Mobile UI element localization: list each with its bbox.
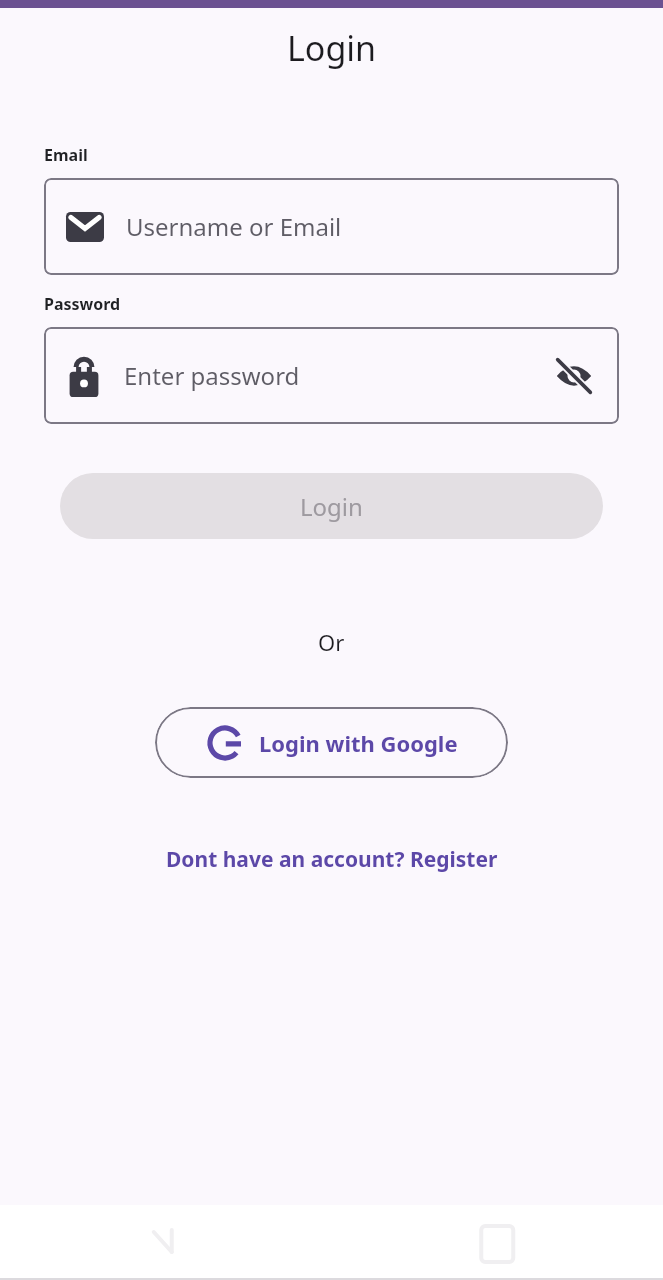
button[interactable]: Login	[60, 473, 603, 539]
other: Email	[66, 212, 104, 242]
staticText: Login	[300, 490, 363, 523]
button[interactable]: Login with Google	[155, 707, 508, 778]
staticText: Username or Email	[126, 210, 342, 243]
staticText: Or	[318, 627, 345, 657]
button[interactable]: Email	[44, 178, 619, 275]
staticText: Dont have an account? Register	[166, 845, 498, 874]
button[interactable]: Dont have an account? Register	[158, 841, 506, 878]
staticText: Login with Google	[259, 728, 458, 758]
staticText: Password	[44, 293, 121, 315]
other: Password	[66, 355, 102, 397]
button[interactable]: Password	[44, 327, 619, 424]
staticText: Email	[44, 144, 88, 166]
staticText: Login	[287, 25, 377, 71]
button[interactable]: Show password	[551, 353, 597, 399]
staticText: Enter password	[124, 359, 300, 392]
